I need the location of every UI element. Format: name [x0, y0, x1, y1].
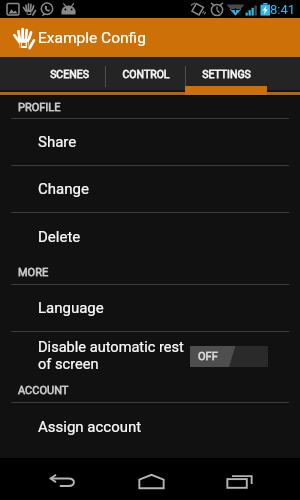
staticText: Change	[38, 180, 89, 198]
button[interactable]: Delete	[0, 213, 300, 260]
button[interactable]: CONTROL	[105, 57, 186, 90]
staticText: PROFILE	[18, 101, 61, 114]
staticText: OFF	[198, 350, 218, 363]
staticText: Disable automatic rest of screen	[38, 338, 190, 373]
staticText: Delete	[38, 228, 81, 246]
staticText: Language	[38, 299, 104, 317]
button[interactable]: Share	[0, 119, 300, 165]
staticText: CONTROL	[122, 68, 170, 80]
button[interactable]: Disable automatic rest of screen toggle,…	[190, 346, 268, 367]
button[interactable]: Assign account	[0, 403, 300, 450]
staticText: SETTINGS	[202, 68, 251, 80]
staticText: Assign account	[38, 418, 142, 436]
button[interactable]: Recents	[215, 458, 263, 500]
button[interactable]: SCENES	[29, 57, 109, 90]
button[interactable]: Disable automatic rest of screen	[0, 332, 300, 378]
button[interactable]: Language	[0, 285, 300, 331]
staticText: Share	[38, 133, 77, 151]
button[interactable]: Change	[0, 166, 300, 212]
staticText: 8:41	[270, 2, 296, 17]
staticText: ACCOUNT	[18, 384, 69, 397]
button[interactable]: Example Config	[0, 18, 300, 57]
button[interactable]: Home	[127, 458, 175, 500]
button[interactable]: Back	[38, 458, 86, 500]
button[interactable]: SETTINGS	[185, 57, 267, 90]
staticText: SCENES	[50, 68, 89, 80]
staticText: MORE	[18, 266, 49, 279]
staticText: Example Config	[38, 29, 146, 47]
